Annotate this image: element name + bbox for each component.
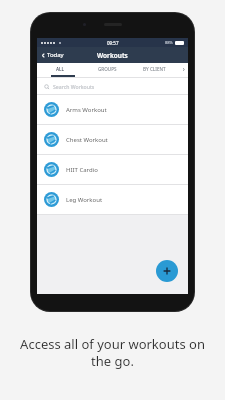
button[interactable]: BY CLIENT [131, 63, 178, 75]
button[interactable]: More tabs [178, 63, 188, 75]
button[interactable]: HIIT Cardio [37, 155, 188, 184]
button[interactable]: Leg Workout [37, 185, 188, 214]
staticText: 88% [165, 40, 173, 45]
button[interactable]: Add workout [156, 260, 178, 282]
staticText: GROUPS [98, 66, 117, 72]
staticText: Arms Workout [66, 106, 107, 114]
staticText: BY CLIENT [143, 66, 166, 72]
staticText: 09:57 [107, 40, 119, 46]
button[interactable]: ALL [37, 63, 84, 75]
staticText: ALL [56, 66, 65, 72]
staticText: Today [47, 51, 64, 59]
staticText: Search Workouts [53, 83, 95, 90]
button[interactable]: Today [40, 51, 64, 59]
staticText: Chest Workout [66, 136, 108, 144]
button[interactable]: Arms Workout [37, 95, 188, 124]
staticText: Workouts [97, 51, 128, 60]
staticText: Leg Workout [66, 196, 103, 204]
button[interactable]: Search Workouts [37, 78, 188, 95]
button[interactable]: Chest Workout [37, 125, 188, 154]
staticText: Access all of your workouts on the go. [20, 335, 205, 370]
staticText: HIIT Cardio [66, 166, 98, 174]
button[interactable]: GROUPS [84, 63, 131, 75]
